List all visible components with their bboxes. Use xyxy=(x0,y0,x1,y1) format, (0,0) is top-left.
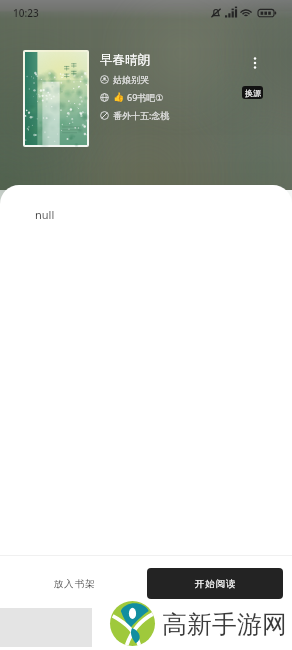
staticText: 姑娘别哭 xyxy=(113,74,149,85)
button[interactable]: 放入书架 xyxy=(9,568,138,599)
staticText: 👍 xyxy=(113,92,125,103)
button[interactable]: 换源 xyxy=(242,86,263,99)
staticText: 换源 xyxy=(245,88,261,98)
staticText: 早春晴朗 xyxy=(100,52,150,68)
staticText: 10:23 xyxy=(13,6,39,20)
button[interactable]: 开始阅读 xyxy=(147,568,283,599)
staticText: null xyxy=(35,207,55,222)
staticText: 番外十五:念桃 xyxy=(113,109,170,121)
staticText: 高新手游网 xyxy=(162,609,287,640)
button[interactable]: More options xyxy=(244,52,266,74)
staticText: 放入书架 xyxy=(53,578,95,590)
staticText: 69书吧① xyxy=(127,91,164,103)
staticText: 开始阅读 xyxy=(194,578,236,590)
